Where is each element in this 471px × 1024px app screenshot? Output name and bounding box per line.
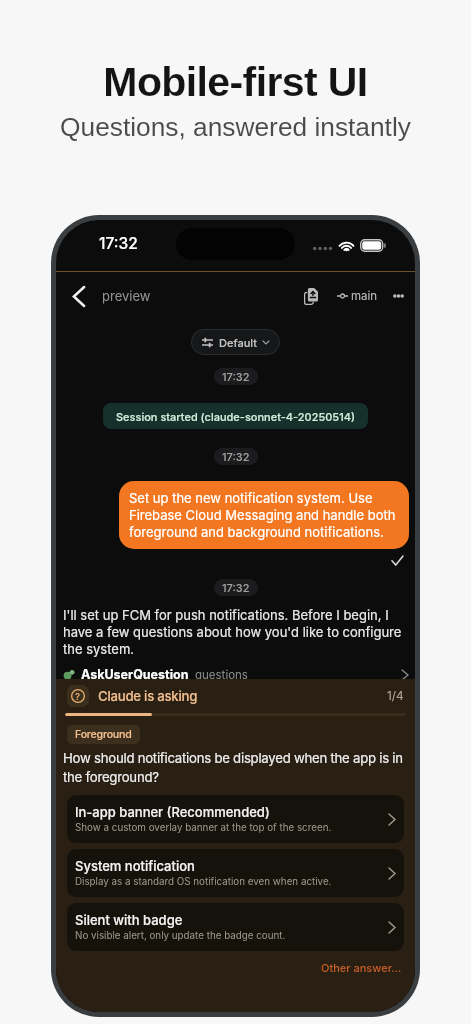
- staticText: Claude is asking: [98, 688, 198, 704]
- staticText: Session started (claude-sonnet-4-2025051…: [116, 410, 355, 423]
- staticText: In-app banner (Recommended): [75, 804, 270, 820]
- button[interactable]: In-app banner (Recommended): [67, 795, 404, 843]
- staticText: preview: [102, 288, 151, 304]
- button[interactable]: main: [335, 283, 380, 309]
- staticText: Show a custom overlay banner at the top …: [75, 822, 332, 834]
- button[interactable]: Export file: [299, 281, 323, 311]
- button[interactable]: Back: [62, 280, 95, 313]
- staticText: questions: [195, 668, 248, 682]
- staticText: Foreground: [75, 728, 132, 741]
- staticText: 17:32: [99, 234, 138, 253]
- staticText: ?: [75, 691, 81, 702]
- staticText: main: [351, 289, 378, 303]
- button[interactable]: More options: [387, 282, 409, 310]
- staticText: Set up the new notification system. Use …: [129, 490, 401, 540]
- staticText: 17:32: [222, 370, 250, 383]
- staticText: Questions, answered instantly: [0, 112, 471, 141]
- button[interactable]: System notification: [67, 849, 404, 897]
- staticText: System notification: [75, 858, 195, 874]
- staticText: 17:32: [222, 581, 250, 594]
- staticText: I'll set up FCM for push notifications. …: [63, 607, 413, 657]
- staticText: How should notifications be displayed wh…: [63, 750, 413, 785]
- staticText: AskUserQuestion: [81, 667, 189, 682]
- staticText: 1/4: [387, 689, 404, 703]
- staticText: Other answer...: [321, 961, 402, 974]
- staticText: No visible alert, only update the badge …: [75, 930, 286, 942]
- staticText: Silent with badge: [75, 912, 183, 928]
- button[interactable]: Default: [191, 329, 280, 355]
- button[interactable]: Silent with badge: [67, 903, 404, 951]
- button[interactable]: Other answer...: [319, 958, 404, 977]
- staticText: Display as a standard OS notification ev…: [75, 876, 332, 888]
- staticText: Mobile-first UI: [0, 59, 471, 105]
- staticText: 17:32: [222, 450, 250, 463]
- staticText: Default: [219, 336, 257, 349]
